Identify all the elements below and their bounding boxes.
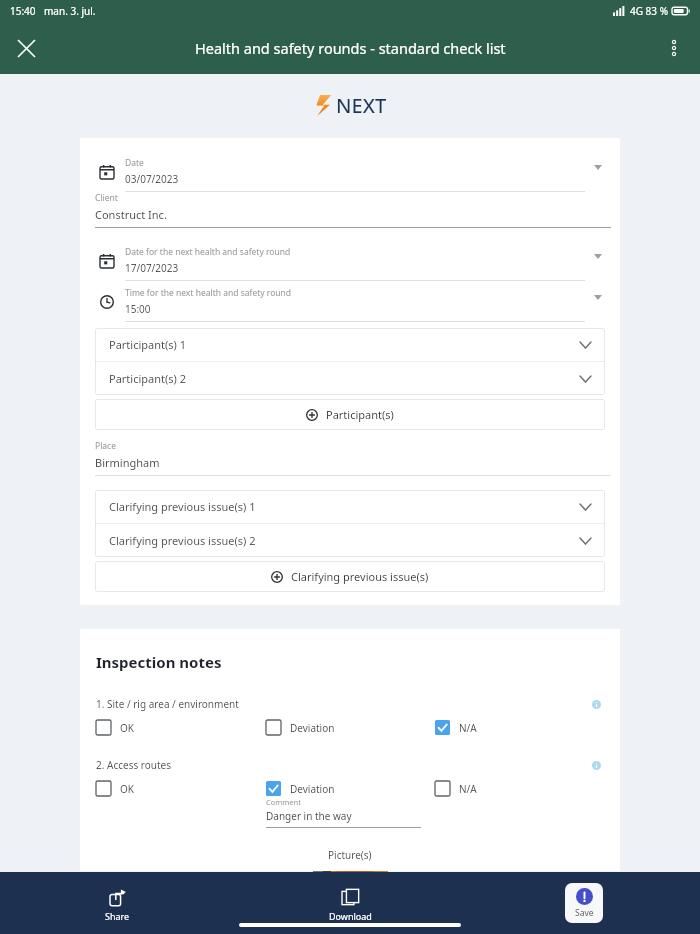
staticText: Inspection notes [96, 652, 222, 672]
staticText: Download [329, 910, 372, 922]
staticText: Participant(s) [326, 407, 394, 422]
button[interactable]: Info [588, 757, 604, 773]
button[interactable]: Participant(s) [95, 399, 605, 430]
staticText: Date for the next health and safety roun… [125, 246, 291, 258]
button[interactable]: Participant(s) 2 [95, 362, 605, 395]
button[interactable]: Time for the next health and safety roun… [79, 281, 621, 322]
button[interactable]: N/A [435, 781, 477, 796]
staticText: man. 3. jul. [44, 4, 96, 18]
staticText: Clarifying previous issue(s) [291, 569, 429, 584]
button[interactable]: Date for the next health and safety roun… [79, 240, 621, 281]
staticText: OK [120, 782, 134, 796]
staticText: Place [95, 440, 116, 452]
staticText: 03/07/2023 [125, 172, 179, 186]
staticText: Time for the next health and safety roun… [125, 287, 292, 299]
staticText: Deviation [290, 782, 335, 796]
button[interactable]: Download [234, 872, 467, 934]
staticText: Participant(s) 1 [109, 337, 187, 352]
staticText: Construct Inc. [95, 207, 167, 222]
staticText: Date [125, 157, 144, 169]
button[interactable]: Participant(s) 1 [95, 328, 605, 361]
staticText: Save [575, 907, 594, 919]
staticText: Share [105, 910, 130, 922]
button[interactable]: Place [95, 440, 611, 476]
button[interactable]: OK [96, 720, 134, 735]
staticText: 1. Site / rig area / environment [96, 697, 239, 711]
staticText: 15:00 [125, 302, 151, 316]
staticText: Clarifying previous issue(s) 1 [109, 499, 256, 514]
button[interactable]: Info [588, 696, 604, 712]
button[interactable]: Clarifying previous issue(s) [95, 561, 605, 592]
staticText: Deviation [290, 721, 335, 735]
button[interactable]: Client [95, 192, 611, 228]
staticText: OK [120, 721, 134, 735]
staticText: 17/07/2023 [125, 261, 179, 275]
staticText: Clarifying previous issue(s) 2 [109, 533, 256, 548]
staticText: N/A [459, 721, 477, 735]
button[interactable]: Clarifying previous issue(s) 1 [95, 490, 605, 523]
button[interactable]: OK [96, 781, 134, 796]
staticText: N/A [459, 782, 477, 796]
staticText: 2. Access routes [96, 758, 172, 772]
button[interactable]: Save [565, 883, 603, 923]
staticText: Danger in the way [266, 809, 352, 823]
staticText: Comment [266, 797, 301, 807]
button[interactable]: More options [656, 30, 692, 66]
button[interactable]: Date [79, 151, 621, 192]
button[interactable]: Share [0, 872, 234, 934]
staticText: Picture(s) [328, 848, 372, 862]
button[interactable]: Deviation [266, 720, 335, 735]
button[interactable]: Close [8, 30, 44, 66]
button[interactable]: Deviation [266, 781, 335, 796]
staticText: NEXT [336, 92, 387, 119]
staticText: Health and safety rounds - standard chec… [195, 38, 506, 58]
staticText: Participant(s) 2 [109, 371, 187, 386]
staticText: 4G 83 % [630, 4, 668, 18]
staticText: Client [95, 192, 118, 204]
button[interactable]: Clarifying previous issue(s) 2 [95, 524, 605, 557]
staticText: Birmingham [95, 455, 160, 470]
button[interactable]: N/A [435, 720, 477, 735]
staticText: 15:40 [10, 4, 36, 18]
